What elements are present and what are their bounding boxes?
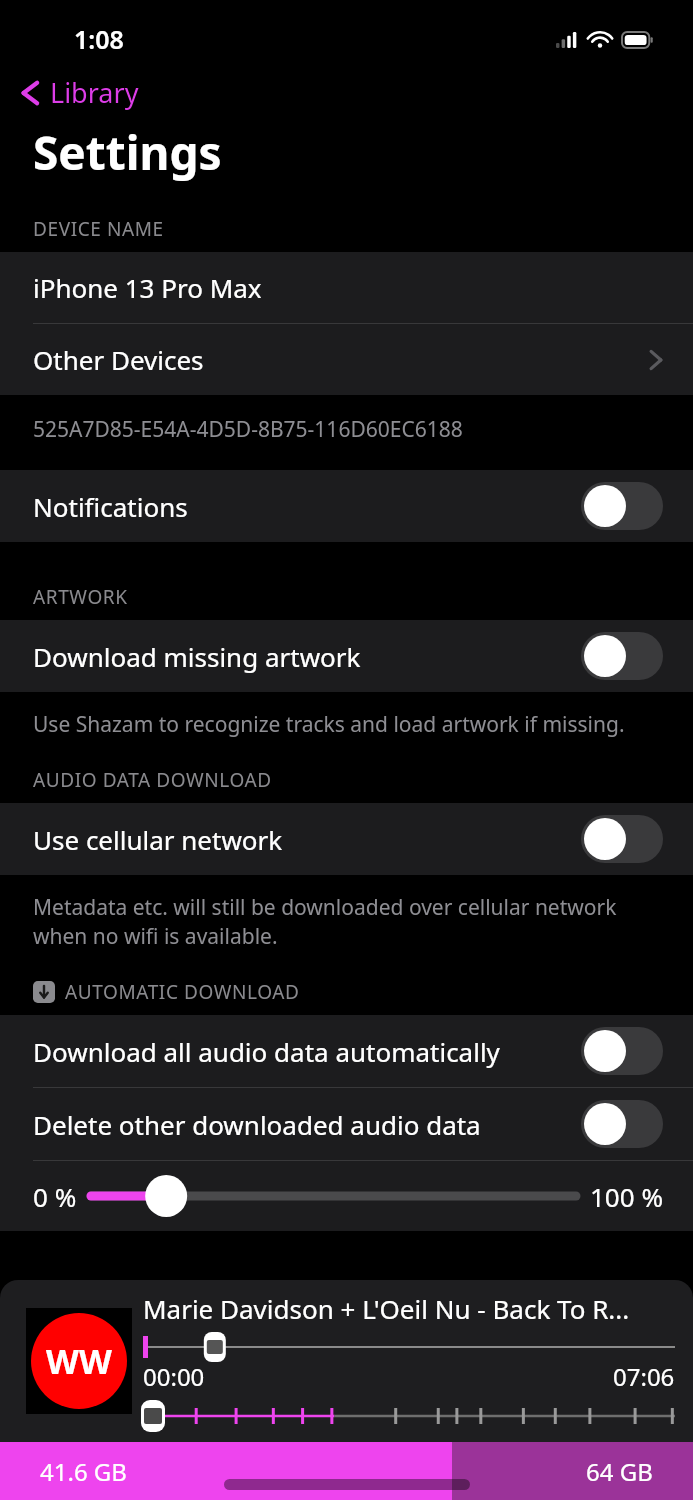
staticText: AUDIO DATA DOWNLOAD <box>33 767 272 793</box>
staticText: Download missing artwork <box>33 639 581 674</box>
button[interactable]: Library <box>0 72 153 117</box>
button[interactable]: 41.6 GB <box>0 1442 693 1500</box>
button[interactable]: WW <box>0 1280 693 1442</box>
staticText: Library <box>50 74 139 111</box>
button[interactable]: Use cellular network <box>0 803 693 875</box>
staticText: 07:06 <box>613 1360 675 1393</box>
staticText: Use Shazam to recognize tracks and load … <box>33 710 673 739</box>
button[interactable]: iPhone 13 Pro Max <box>0 252 693 323</box>
staticText: Delete other downloaded audio data <box>33 1107 581 1142</box>
staticText: Other Devices <box>33 342 649 377</box>
button[interactable]: Download missing artwork <box>0 620 693 692</box>
button[interactable]: Other Devices <box>0 324 693 395</box>
button[interactable]: Delete other downloaded audio data <box>0 1088 693 1160</box>
staticText: 100 % <box>590 1179 663 1214</box>
staticText: Notifications <box>33 489 581 524</box>
staticText: ARTWORK <box>33 584 128 610</box>
staticText: 1:08 <box>74 22 124 56</box>
button[interactable]: 0 % <box>0 1161 693 1231</box>
staticText: 525A7D85-E54A-4D5D-8B75-116D60EC6188 <box>33 415 673 444</box>
staticText: 64 GB <box>586 1455 653 1488</box>
staticText: 00:00 <box>143 1360 205 1393</box>
staticText: WW <box>46 1338 112 1384</box>
staticText: DEVICE NAME <box>33 216 164 242</box>
staticText: 0 % <box>33 1179 77 1214</box>
button[interactable]: Download all audio data automatically <box>0 1015 693 1087</box>
staticText: AUTOMATIC DOWNLOAD <box>65 979 300 1005</box>
staticText: Download all audio data automatically <box>33 1034 581 1069</box>
staticText: iPhone 13 Pro Max <box>33 270 262 305</box>
staticText: Metadata etc. will still be downloaded o… <box>33 893 673 951</box>
button[interactable]: Notifications <box>0 470 693 542</box>
staticText: Settings <box>33 121 222 184</box>
staticText: 41.6 GB <box>40 1455 127 1488</box>
staticText: Marie Davidson + L'Oeil Nu - Back To R..… <box>143 1291 630 1326</box>
staticText: Use cellular network <box>33 822 581 857</box>
